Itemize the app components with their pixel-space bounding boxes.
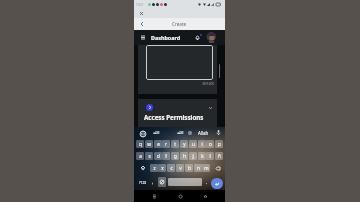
button[interactable]: ñ (215, 152, 223, 160)
staticText: n (197, 165, 200, 171)
staticText: ?123 (139, 180, 147, 185)
button[interactable]: Keyboard settings (138, 129, 147, 138)
button[interactable]: w (145, 140, 153, 148)
button[interactable]: u (189, 140, 197, 148)
button[interactable]: Close (137, 9, 146, 18)
button[interactable]: b (185, 164, 193, 172)
button[interactable]: d (154, 152, 162, 160)
staticText: o (209, 141, 212, 147)
button[interactable]: Back (137, 18, 146, 30)
staticText: y (183, 141, 186, 147)
staticText: x (161, 165, 164, 171)
button[interactable]: j (189, 152, 197, 160)
button[interactable]: f (162, 152, 170, 160)
button[interactable]: m (202, 164, 210, 172)
button[interactable]: c (167, 164, 175, 172)
button[interactable]: Settings (186, 129, 193, 136)
button[interactable]: Home (175, 191, 185, 201)
staticText: . (206, 179, 208, 185)
button[interactable]: Shift (136, 164, 149, 172)
button[interactable]: Profile (206, 32, 217, 43)
button[interactable]: l (206, 152, 214, 160)
button[interactable]: h (180, 152, 188, 160)
staticText: p (218, 141, 221, 147)
staticText: b (188, 165, 191, 171)
staticText: w (147, 141, 151, 147)
staticText: g (174, 153, 177, 159)
staticText: i (201, 141, 203, 147)
button[interactable]: k (198, 152, 206, 160)
button[interactable]: r (162, 140, 170, 148)
staticText: d (157, 153, 160, 159)
button[interactable]: . (203, 177, 210, 187)
staticText: l (209, 153, 211, 159)
button[interactable]: Space (168, 178, 202, 186)
staticText: الله (177, 130, 184, 135)
staticText: e (157, 141, 160, 147)
staticText: c (170, 165, 173, 171)
staticText: 38/5000 (202, 82, 215, 86)
button[interactable]: t (171, 140, 179, 148)
staticText: k (201, 153, 204, 159)
staticText: v (179, 165, 182, 171)
button[interactable]: Back (200, 191, 210, 201)
staticText: f (165, 153, 167, 159)
button[interactable]: e (154, 140, 162, 148)
staticText: r (165, 141, 167, 147)
button[interactable]: Recents (149, 191, 159, 201)
button[interactable]: v (176, 164, 184, 172)
button[interactable]: ?123 (136, 177, 149, 187)
staticText: a (139, 153, 142, 159)
staticText: m (204, 165, 209, 171)
button[interactable]: Access Permissions (138, 99, 217, 127)
staticText: Dashboard (151, 34, 181, 41)
button[interactable]: Voice input (215, 129, 222, 136)
button[interactable]: s (145, 152, 153, 160)
staticText: Access Permissions (144, 113, 204, 121)
button[interactable]: q (136, 140, 144, 148)
staticText: j (192, 153, 194, 159)
button[interactable]: Notifications (193, 30, 202, 45)
staticText: q (139, 141, 142, 147)
staticText: Create (172, 21, 187, 27)
button[interactable]: i (198, 140, 206, 148)
staticText: s (148, 153, 151, 159)
button[interactable]: x (158, 164, 166, 172)
staticText: t (174, 141, 176, 147)
staticText: 10:21 (136, 3, 144, 7)
button[interactable]: Enter (211, 178, 223, 189)
staticText: h (183, 153, 186, 159)
button[interactable]: n (194, 164, 202, 172)
button[interactable]: Emoji (158, 177, 166, 187)
button[interactable]: , (149, 177, 157, 187)
button[interactable]: y (180, 140, 188, 148)
button[interactable]: Backspace (211, 164, 224, 172)
button[interactable]: o (206, 140, 214, 148)
staticText: , (152, 179, 154, 185)
staticText: Allah (198, 130, 209, 136)
staticText: الله (153, 130, 160, 135)
button[interactable]: g (171, 152, 179, 160)
staticText: z (153, 165, 156, 171)
button[interactable]: a (136, 152, 144, 160)
staticText: ñ (218, 153, 221, 159)
button[interactable] (146, 45, 213, 80)
button[interactable]: z (150, 164, 158, 172)
button[interactable]: p (215, 140, 223, 148)
staticText: u (192, 141, 195, 147)
button[interactable]: Menu (138, 30, 147, 45)
